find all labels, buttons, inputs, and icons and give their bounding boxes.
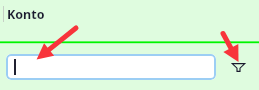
staticText: Konto — [7, 6, 45, 23]
button[interactable]: Filter — [231, 61, 247, 73]
button[interactable] — [6, 54, 216, 80]
